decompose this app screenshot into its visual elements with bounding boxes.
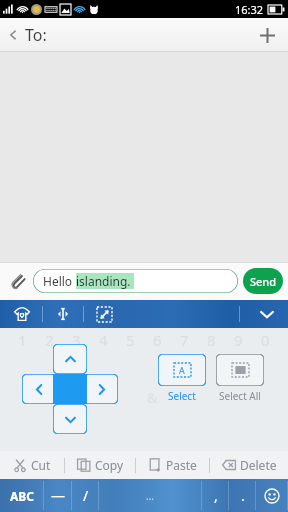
button[interactable]: Send [243, 268, 283, 294]
staticText: Select [168, 389, 196, 403]
staticText: 2 [45, 330, 54, 350]
staticText: 3 [72, 330, 81, 350]
button[interactable]: Left [22, 374, 56, 404]
staticText: 7 [180, 330, 189, 350]
staticText: To: [25, 24, 47, 46]
button[interactable]: . [229, 479, 256, 512]
button[interactable]: Select All [216, 354, 264, 403]
staticText: 8 [207, 330, 216, 350]
button[interactable]: Down [53, 404, 87, 434]
button[interactable]: Right [84, 374, 118, 404]
staticText: 6 [153, 330, 162, 350]
button[interactable]: Add recipient [252, 20, 282, 50]
button[interactable]: Cut [0, 451, 64, 479]
button[interactable]: Emoji [256, 479, 288, 512]
staticText: Paste [166, 457, 197, 473]
button[interactable]: Delete [210, 451, 288, 479]
button[interactable]: Paste [136, 451, 209, 479]
staticText: & [147, 388, 158, 407]
staticText: ... [146, 489, 155, 503]
staticText: / [83, 486, 89, 505]
staticText: 1 [18, 330, 27, 350]
staticText: Send [250, 274, 277, 289]
button[interactable]: , [202, 479, 229, 512]
button[interactable]: ABC [0, 479, 44, 512]
staticText: Hello [43, 273, 76, 289]
button[interactable]: Cursor control [51, 302, 75, 326]
button[interactable]: A [158, 354, 206, 403]
staticText: Delete [240, 457, 277, 473]
staticText: 16:32 [235, 2, 264, 17]
staticText: A [179, 364, 185, 376]
button[interactable]: Copy [65, 451, 135, 479]
button[interactable]: / [72, 479, 99, 512]
staticText: 5 [126, 330, 135, 350]
button[interactable]: Hide keyboard [254, 301, 280, 327]
staticText: islanding. [76, 273, 134, 289]
staticText: 9 [234, 330, 243, 350]
staticText: Cut [31, 457, 51, 473]
staticText: Select All [219, 389, 261, 403]
staticText: Copy [95, 457, 124, 473]
button[interactable]: Space [99, 479, 202, 512]
button[interactable]: Attach [5, 268, 31, 294]
staticText: . [241, 486, 245, 505]
other: Back [8, 27, 18, 43]
button[interactable]: — [44, 479, 72, 512]
button[interactable]: Up [53, 344, 87, 374]
button[interactable]: Hello [33, 269, 238, 293]
staticText: , [214, 486, 218, 505]
staticText: — [51, 486, 65, 505]
staticText: 0 [261, 330, 270, 350]
staticText: 4 [99, 330, 108, 350]
button[interactable]: Theme [10, 302, 34, 326]
staticText: ABC [10, 488, 34, 504]
button[interactable]: Resize keyboard [92, 302, 116, 326]
button[interactable]: Back [0, 20, 55, 50]
